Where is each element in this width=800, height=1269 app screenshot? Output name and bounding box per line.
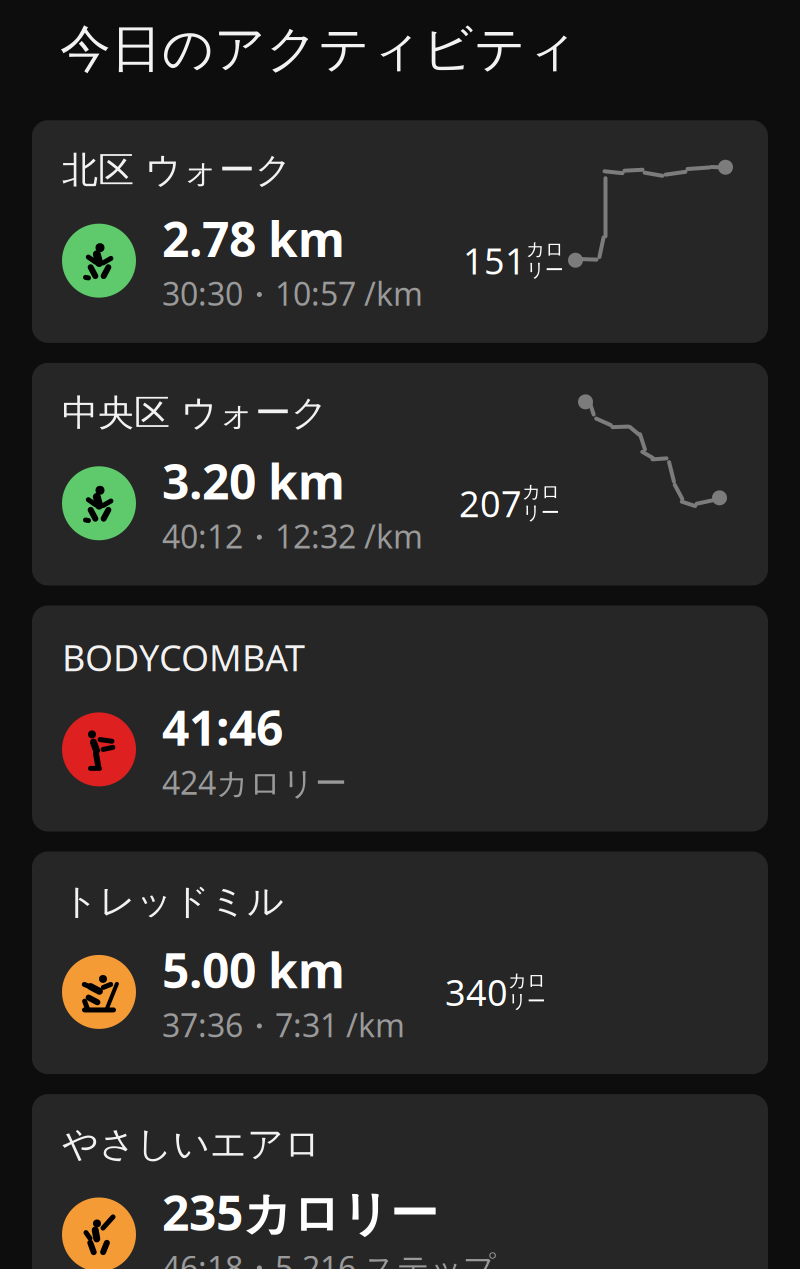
staticText: 中央区 ウォーク [62,391,328,435]
staticText: カロ [508,969,546,992]
staticText: 207 [459,479,522,527]
staticText: 46:18・5,216 ステップ [162,1246,496,1269]
staticText: 30:30・10:57 /km [162,272,423,315]
button[interactable]: やさしいエアロ [32,1094,768,1269]
staticText: カロ [522,480,560,503]
staticText: 41:46 [162,695,283,759]
staticText: やさしいエアロ [62,1122,321,1166]
button[interactable]: BODYCOMBAT [32,605,768,831]
staticText: 424カロリー [162,761,347,803]
button[interactable]: 中央区 ウォーク [32,363,768,585]
staticText: リー [526,259,564,282]
staticText: 40:12・12:32 /km [162,515,423,557]
staticText: BODYCOMBAT [62,633,305,681]
staticText: カロ [526,238,564,261]
staticText: 2.78 km [162,206,345,270]
staticText: 3.20 km [162,449,345,513]
staticText: リー [522,501,560,524]
staticText: 37:36・7:31 /km [162,1003,405,1046]
button[interactable]: トレッドミル [32,851,768,1074]
staticText: リー [508,990,546,1013]
staticText: 235カロリー [162,1180,438,1244]
staticText: 北区 ウォーク [62,148,292,192]
button[interactable]: 北区 ウォーク [32,120,768,343]
staticText: 151 [463,237,526,284]
staticText: トレッドミル [62,879,284,924]
staticText: 5.00 km [162,938,345,1001]
staticText: 今日のアクティビティ [60,18,578,80]
staticText: 340 [445,968,508,1016]
